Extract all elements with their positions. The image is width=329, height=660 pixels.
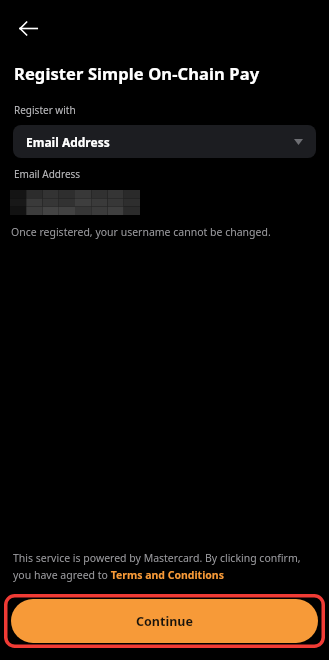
staticText: Register with xyxy=(14,103,76,117)
button[interactable]: Back xyxy=(8,8,48,48)
staticText: Once registered, your username cannot be… xyxy=(11,225,271,239)
staticText: Email Address xyxy=(14,167,81,181)
staticText: Email Address xyxy=(26,134,110,150)
button[interactable]: Continue xyxy=(11,599,318,643)
staticText: Register Simple On-Chain Pay xyxy=(14,62,260,84)
staticText: Continue xyxy=(136,613,193,630)
button[interactable]: Email Address xyxy=(13,125,316,158)
button[interactable]: This service is powered by Mastercard. B… xyxy=(13,551,316,582)
